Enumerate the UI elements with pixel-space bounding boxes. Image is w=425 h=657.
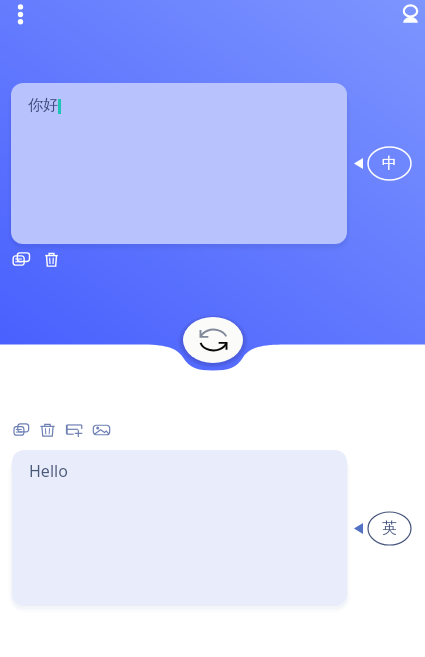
button[interactable]: Hello	[12, 450, 347, 606]
button[interactable]: Add to notes	[62, 419, 86, 441]
button[interactable]: Insert image	[89, 419, 114, 441]
button[interactable]: Account	[399, 0, 423, 26]
button[interactable]: Delete translation	[36, 419, 59, 441]
button[interactable]: Copy	[8, 248, 35, 270]
button[interactable]: Target language English	[368, 512, 411, 545]
button[interactable]: Delete	[38, 248, 65, 271]
staticText: 你好	[28, 96, 58, 115]
button[interactable]: More options	[9, 0, 33, 30]
button[interactable]: Source language Chinese	[368, 147, 411, 180]
staticText: Hello	[29, 460, 68, 482]
button[interactable]: 你好	[11, 83, 347, 244]
button[interactable]: Copy translation	[9, 419, 33, 440]
button[interactable]: Swap languages	[183, 317, 243, 363]
staticText: 英	[382, 519, 397, 538]
staticText: 中	[382, 154, 397, 173]
